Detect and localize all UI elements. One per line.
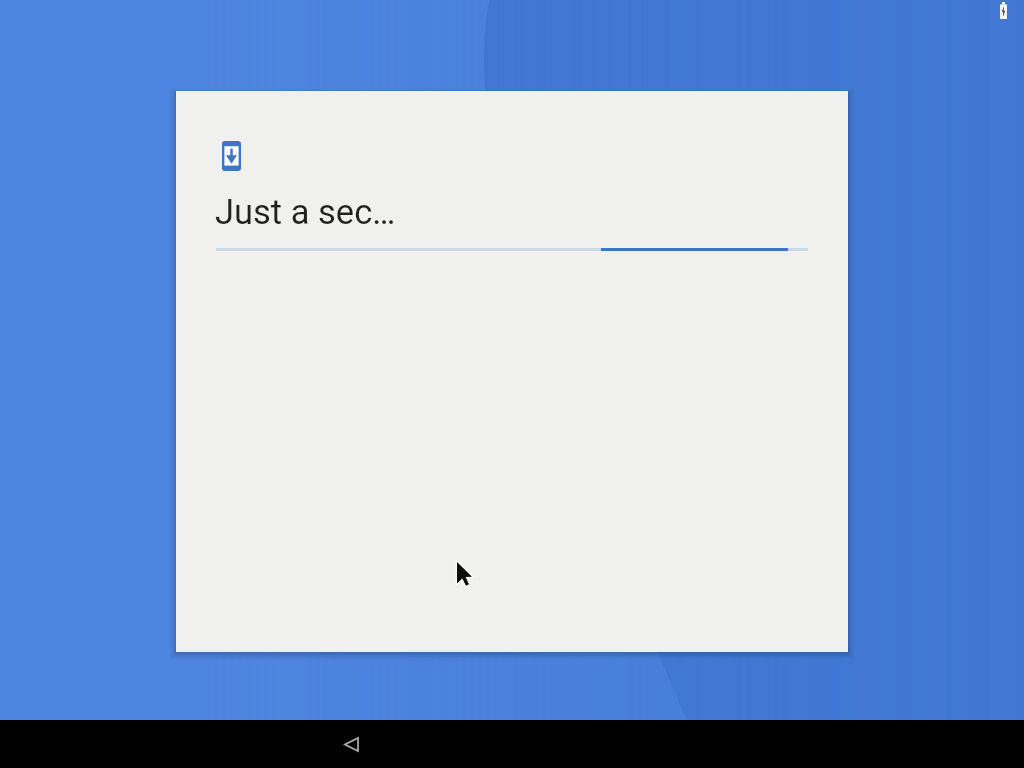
- staticText: Just a sec…: [215, 192, 396, 232]
- other: Battery charging: [999, 2, 1008, 19]
- button[interactable]: Back: [327, 720, 375, 768]
